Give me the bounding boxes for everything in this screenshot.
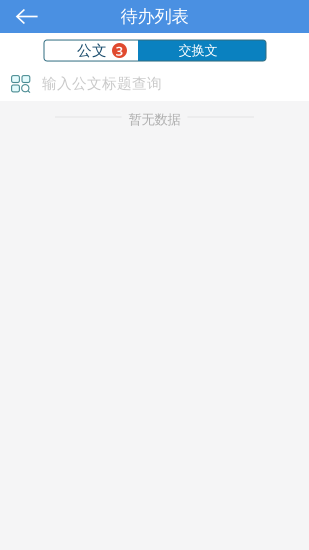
staticText: 3: [115, 42, 123, 59]
button[interactable]: 输入公文标题查询: [42, 61, 309, 99]
staticText: 输入公文标题查询: [42, 74, 162, 92]
button[interactable]: Scan: [0, 61, 42, 99]
staticText: 暂无数据: [128, 111, 180, 128]
button[interactable]: 公文: [44, 40, 138, 61]
button[interactable]: Back: [0, 0, 51, 33]
button[interactable]: 交换文: [138, 40, 266, 61]
staticText: 公文: [77, 41, 107, 59]
staticText: 交换文: [178, 42, 217, 59]
staticText: 待办列表: [120, 6, 188, 27]
